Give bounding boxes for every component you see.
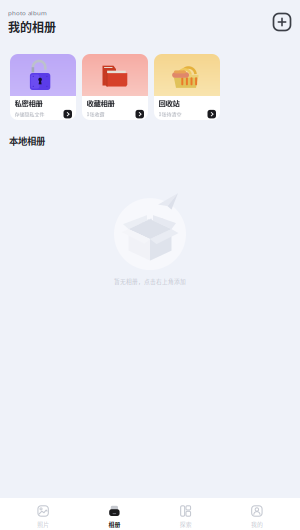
button[interactable]: 收藏相册: [82, 54, 148, 120]
staticText: 0张收藏: [86, 110, 104, 118]
staticText: 私密相册: [14, 98, 42, 108]
button[interactable]: 照片: [7, 496, 79, 530]
staticText: 我的: [251, 520, 263, 528]
button[interactable]: 探索: [150, 496, 221, 530]
staticText: 照片: [37, 520, 49, 528]
staticText: 探索: [180, 520, 192, 528]
staticText: 0张待清空: [158, 110, 181, 118]
button[interactable]: 回收站: [154, 54, 220, 120]
staticText: 暂无相册，点击右上角添加: [114, 277, 186, 285]
button[interactable]: 相册: [79, 496, 150, 530]
staticText: photo album: [8, 9, 47, 17]
button[interactable]: Add album: [270, 10, 294, 34]
staticText: 本地相册: [9, 134, 45, 147]
button[interactable]: 我的: [221, 496, 292, 530]
button[interactable]: 私密相册: [10, 54, 76, 120]
staticText: 我的相册: [8, 18, 56, 35]
staticText: 收藏相册: [86, 98, 114, 108]
staticText: 存储隐私文件: [14, 110, 44, 118]
staticText: 相册: [108, 520, 120, 528]
staticText: 回收站: [158, 98, 179, 108]
